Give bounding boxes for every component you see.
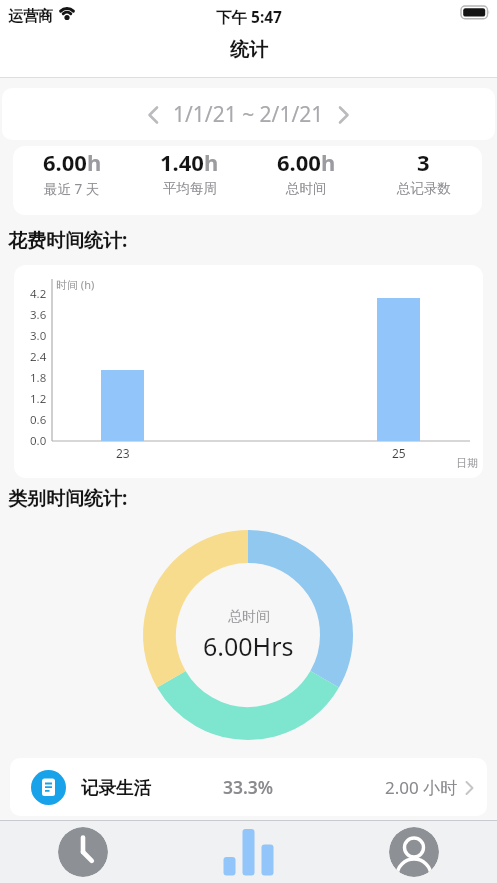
staticText: 平均每周 bbox=[163, 180, 217, 197]
staticText: 2.00 小时 bbox=[385, 776, 458, 799]
staticText: 6.00h bbox=[43, 147, 102, 177]
staticText: 0.6 bbox=[30, 412, 47, 428]
staticText: 6.00h bbox=[277, 147, 336, 177]
staticText: 花费时间统计: bbox=[8, 227, 128, 253]
button[interactable]: 记录生活 bbox=[10, 758, 487, 816]
staticText: 统计 bbox=[230, 38, 268, 62]
staticText: 日期 bbox=[456, 456, 478, 470]
staticText: 下午 5:47 bbox=[216, 6, 282, 27]
staticText: 总时间 bbox=[228, 608, 270, 626]
staticText: 总时间 bbox=[286, 180, 327, 197]
staticText: 1.8 bbox=[30, 370, 47, 386]
staticText: 2.4 bbox=[30, 349, 47, 365]
button[interactable] bbox=[337, 105, 351, 125]
staticText: 记录生活 bbox=[81, 777, 151, 799]
staticText: 类别时间统计: bbox=[8, 485, 128, 511]
staticText: 3.0 bbox=[30, 328, 47, 344]
staticText: 最近 7 天 bbox=[44, 180, 100, 198]
staticText: 4.2 bbox=[30, 286, 47, 302]
staticText: 3 bbox=[417, 147, 430, 177]
staticText: 25 bbox=[392, 445, 406, 461]
button[interactable] bbox=[0, 821, 165, 883]
staticText: 6.00Hrs bbox=[203, 629, 294, 663]
staticText: 1.40h bbox=[160, 147, 219, 177]
staticText: 3.6 bbox=[30, 307, 47, 323]
button[interactable] bbox=[331, 821, 497, 883]
staticText: 运营商 bbox=[8, 7, 53, 26]
staticText: 总记录数 bbox=[397, 180, 451, 197]
staticText: 33.3% bbox=[223, 775, 274, 799]
staticText: 1.2 bbox=[30, 391, 47, 407]
staticText: 0.0 bbox=[30, 433, 47, 449]
staticText: 时间 (h) bbox=[56, 277, 95, 292]
button[interactable] bbox=[165, 821, 331, 883]
staticText: 23 bbox=[116, 445, 130, 461]
staticText: 1/1/21 ~ 2/1/21 bbox=[173, 100, 324, 129]
button[interactable]: 1/1/21 ~ 2/1/21 bbox=[2, 88, 495, 140]
button[interactable] bbox=[146, 105, 160, 125]
